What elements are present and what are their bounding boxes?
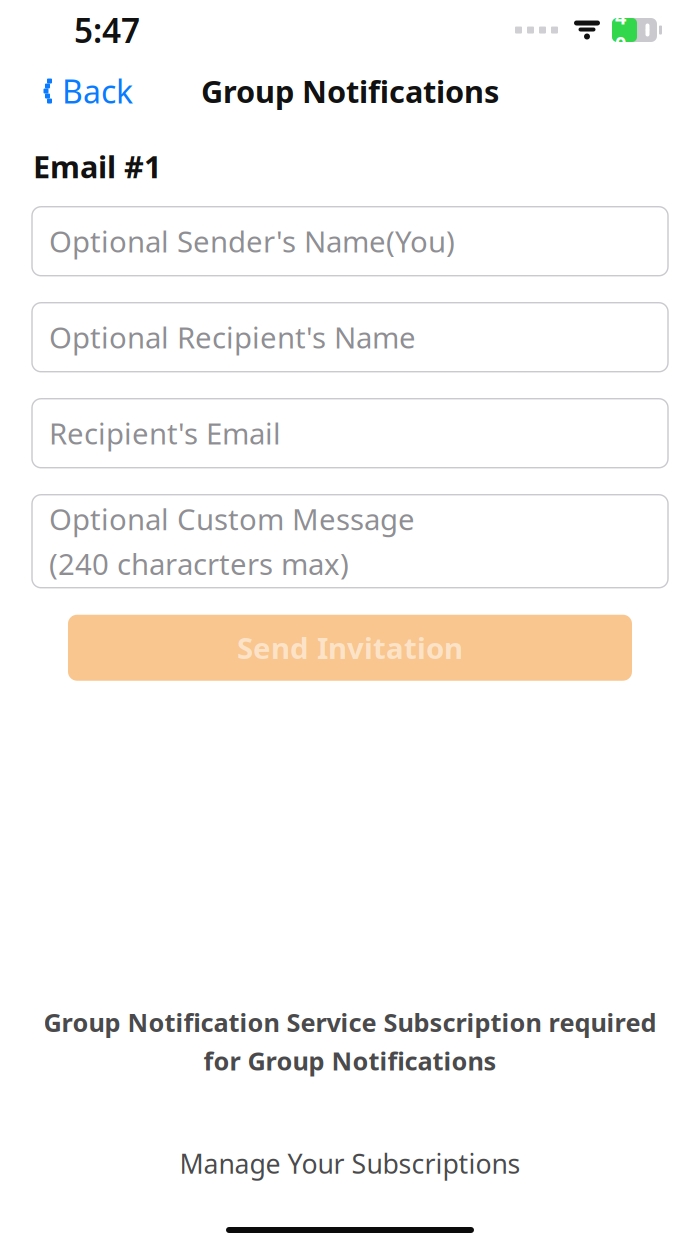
staticText: Send Invitation (237, 628, 463, 667)
staticText: Optional Recipient's Name (49, 318, 416, 357)
button[interactable]: Optional Custom Message (32, 495, 668, 588)
staticText: Group Notifications (201, 71, 499, 111)
button[interactable]: Optional Recipient's Name (32, 303, 668, 372)
staticText: Manage Your Subscriptions (179, 1146, 520, 1181)
staticText: Optional Custom Message (49, 499, 415, 538)
staticText: Optional Sender's Name(You) (49, 222, 455, 261)
staticText: (240 characrters max) (49, 544, 349, 583)
staticText: for Group Notifications (203, 1044, 496, 1077)
staticText: Group Notification Service Subscription … (43, 1005, 656, 1039)
button[interactable]: Manage Your Subscriptions (161, 1136, 538, 1191)
button[interactable]: Optional Sender's Name(You) (32, 207, 668, 276)
staticText: 40 (615, 3, 626, 56)
button[interactable]: Send Invitation (68, 615, 632, 681)
staticText: 5:47 (74, 8, 140, 52)
button[interactable]: Recipient's Email (32, 399, 668, 468)
staticText: Recipient's Email (49, 414, 281, 453)
staticText: Email #1 (33, 146, 162, 187)
button[interactable]: Back (32, 61, 139, 121)
staticText: Back (62, 70, 133, 112)
